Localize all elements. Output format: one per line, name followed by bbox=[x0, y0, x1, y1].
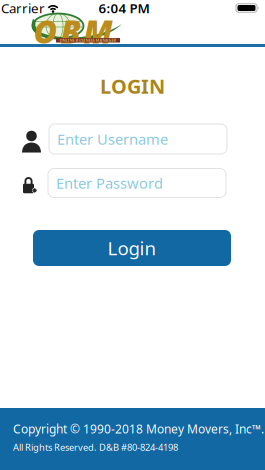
staticText: 6:04 PM bbox=[98, 0, 149, 17]
button[interactable]: Enter Username bbox=[49, 124, 227, 154]
staticText: LOGIN bbox=[100, 73, 165, 99]
staticText: Enter Password bbox=[56, 173, 163, 193]
staticText: ONLINE BUSINESS MANAGER bbox=[59, 38, 116, 43]
button[interactable]: Enter Password bbox=[48, 168, 226, 197]
staticText: OBM bbox=[33, 10, 112, 52]
button[interactable]: Login bbox=[33, 230, 231, 266]
staticText: Copyright © 1990-2018 Money Movers, Inc™… bbox=[13, 421, 264, 437]
staticText: All Rights Reserved. D&B #80-824-4198 bbox=[13, 441, 178, 453]
staticText: Login bbox=[107, 236, 156, 260]
staticText: Carrier bbox=[1, 0, 45, 17]
staticText: Enter Username bbox=[57, 129, 168, 149]
